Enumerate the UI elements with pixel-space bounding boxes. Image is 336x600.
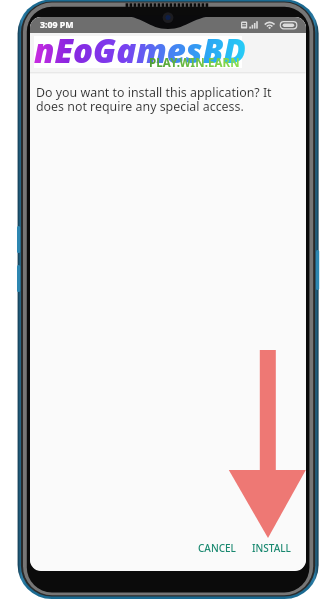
- button[interactable]: INSTALL: [244, 539, 299, 557]
- staticText: 3:09 PM: [40, 19, 74, 31]
- staticText: nEoGamesBD: [34, 28, 246, 67]
- staticText: PLAY.WIN.EARN: [149, 55, 240, 71]
- staticText: INSTALL: [252, 541, 291, 555]
- button[interactable]: CANCEL: [190, 539, 244, 557]
- staticText: CANCEL: [198, 541, 236, 555]
- staticText: Do you want to install this application?…: [36, 84, 276, 114]
